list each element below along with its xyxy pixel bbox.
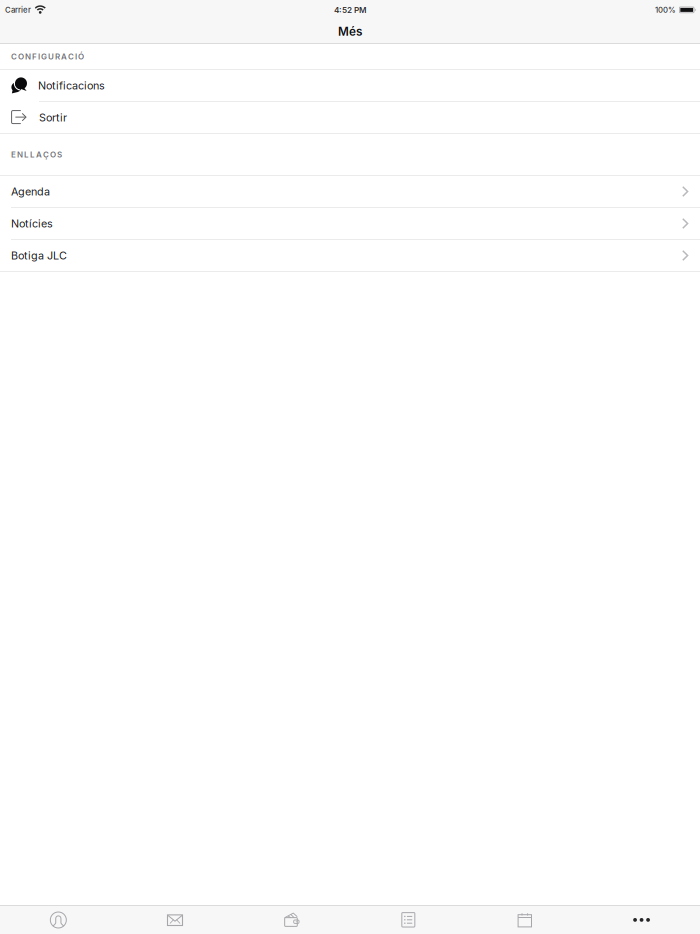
- staticText: C O N F I G U R A C I Ó: [11, 52, 84, 61]
- button[interactable]: Missatges: [117, 906, 233, 934]
- staticText: Botiga JLC: [11, 249, 67, 262]
- button[interactable]: Notificacions: [0, 70, 700, 101]
- button[interactable]: Botiga JLC: [0, 240, 700, 271]
- button[interactable]: Llistat: [350, 906, 467, 934]
- staticText: Notícies: [11, 217, 53, 230]
- button[interactable]: Cartera: [233, 906, 350, 934]
- staticText: Sortir: [39, 111, 67, 124]
- staticText: Notificacions: [38, 79, 105, 92]
- staticText: Carrier: [5, 5, 31, 15]
- staticText: E N L L A Ç O S: [11, 150, 62, 159]
- staticText: 100%: [655, 5, 676, 15]
- staticText: Agenda: [11, 185, 50, 198]
- button[interactable]: Agenda: [0, 176, 700, 207]
- button[interactable]: Sortir: [0, 102, 700, 133]
- staticText: 4:52 PM: [334, 5, 367, 15]
- staticText: Més: [338, 24, 362, 39]
- button[interactable]: Notícies: [0, 208, 700, 239]
- button[interactable]: Més: [583, 906, 700, 934]
- button[interactable]: Calendari: [467, 906, 583, 934]
- button[interactable]: Perfil: [0, 906, 117, 934]
